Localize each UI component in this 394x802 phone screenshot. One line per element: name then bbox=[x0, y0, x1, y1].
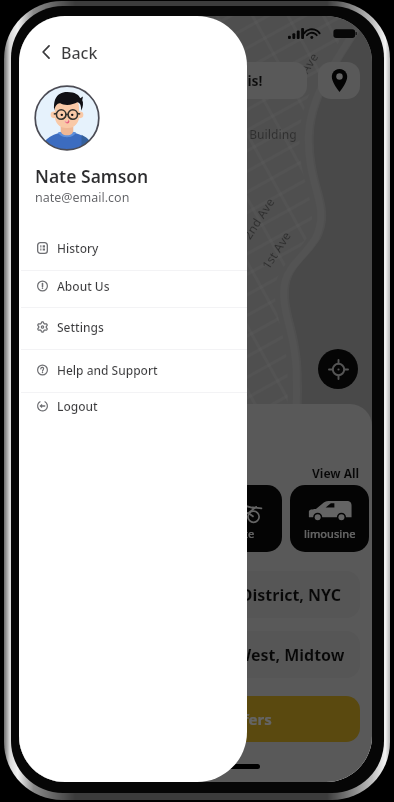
staticText: Settings bbox=[57, 319, 104, 335]
staticText: Check out our offers bbox=[119, 709, 272, 729]
button[interactable]: 1350 Broadway Avenue West, Midtown Ma... bbox=[31, 631, 360, 678]
staticText: Empire State Building bbox=[173, 126, 297, 142]
button[interactable]: Help and Support bbox=[19, 352, 247, 388]
staticText: 2nd Ave bbox=[239, 194, 278, 242]
button[interactable]: bike bbox=[203, 485, 282, 552]
button[interactable]: 11 Wall Street, Financial District, NYC bbox=[31, 571, 360, 618]
button[interactable]: Current location bbox=[318, 62, 360, 99]
staticText: 1st Ave bbox=[258, 228, 294, 272]
staticText: bike bbox=[232, 526, 255, 541]
staticText: History bbox=[57, 240, 99, 256]
button[interactable]: About Us bbox=[19, 268, 247, 304]
staticText: limousine bbox=[304, 526, 356, 541]
button[interactable]: Check out our offers bbox=[31, 696, 360, 742]
button[interactable]: Back bbox=[19, 42, 118, 62]
staticText: nate@email.con bbox=[35, 189, 130, 206]
button[interactable]: History bbox=[19, 230, 247, 266]
staticText: Help and Support bbox=[57, 362, 158, 378]
button[interactable]: Logout bbox=[19, 388, 247, 424]
staticText: Nate Samson bbox=[35, 164, 149, 188]
button[interactable]: Recenter map bbox=[318, 349, 358, 389]
staticText: Logout bbox=[57, 398, 98, 414]
staticText: 3rd Ave bbox=[284, 49, 322, 95]
staticText: 1350 Broadway Avenue West, Midtown Ma... bbox=[47, 644, 344, 666]
staticText: About Us bbox=[57, 278, 110, 294]
button[interactable]: Hey, where are you going, Luis! bbox=[31, 62, 307, 99]
button[interactable]: limousine bbox=[290, 485, 369, 552]
staticText: Hey, where are you going, Luis! bbox=[46, 71, 263, 90]
button[interactable]: Settings bbox=[19, 309, 247, 345]
button[interactable]: View All bbox=[312, 465, 360, 481]
staticText: 11 Wall Street, Financial District, NYC bbox=[47, 584, 344, 606]
staticText: Back bbox=[61, 42, 98, 62]
